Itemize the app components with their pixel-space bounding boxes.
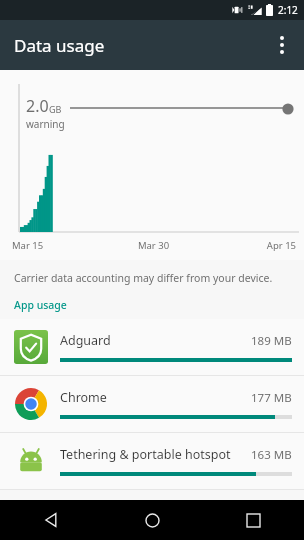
staticText: Apr 15 — [201, 239, 296, 252]
staticText: Tethering & portable hotspot — [60, 446, 251, 463]
staticText: 189 MB — [251, 333, 292, 349]
staticText: Chrome — [60, 389, 251, 406]
button[interactable]: Home — [102, 500, 203, 540]
staticText: Mar 30 — [106, 239, 201, 252]
staticText: Data usage — [14, 34, 105, 57]
button[interactable]: Back — [0, 500, 102, 540]
button[interactable]: Tethering & portable hotspot — [0, 433, 304, 489]
staticText: 177 MB — [251, 390, 292, 406]
button[interactable]: More options — [260, 23, 304, 67]
staticText: 2:12 — [278, 3, 298, 17]
button[interactable]: Recent apps — [203, 500, 304, 540]
staticText: Mar 15 — [12, 239, 106, 252]
staticText: warning — [26, 117, 65, 131]
staticText: App usage — [14, 298, 67, 312]
staticText: 2.0 — [26, 95, 49, 117]
button[interactable]: Adguard — [0, 319, 304, 375]
staticText: Adguard — [60, 332, 251, 349]
staticText: Carrier data accounting may differ from … — [14, 271, 273, 285]
staticText: GB — [49, 103, 62, 115]
staticText: 163 MB — [251, 447, 292, 463]
button[interactable]: Chrome — [0, 376, 304, 432]
